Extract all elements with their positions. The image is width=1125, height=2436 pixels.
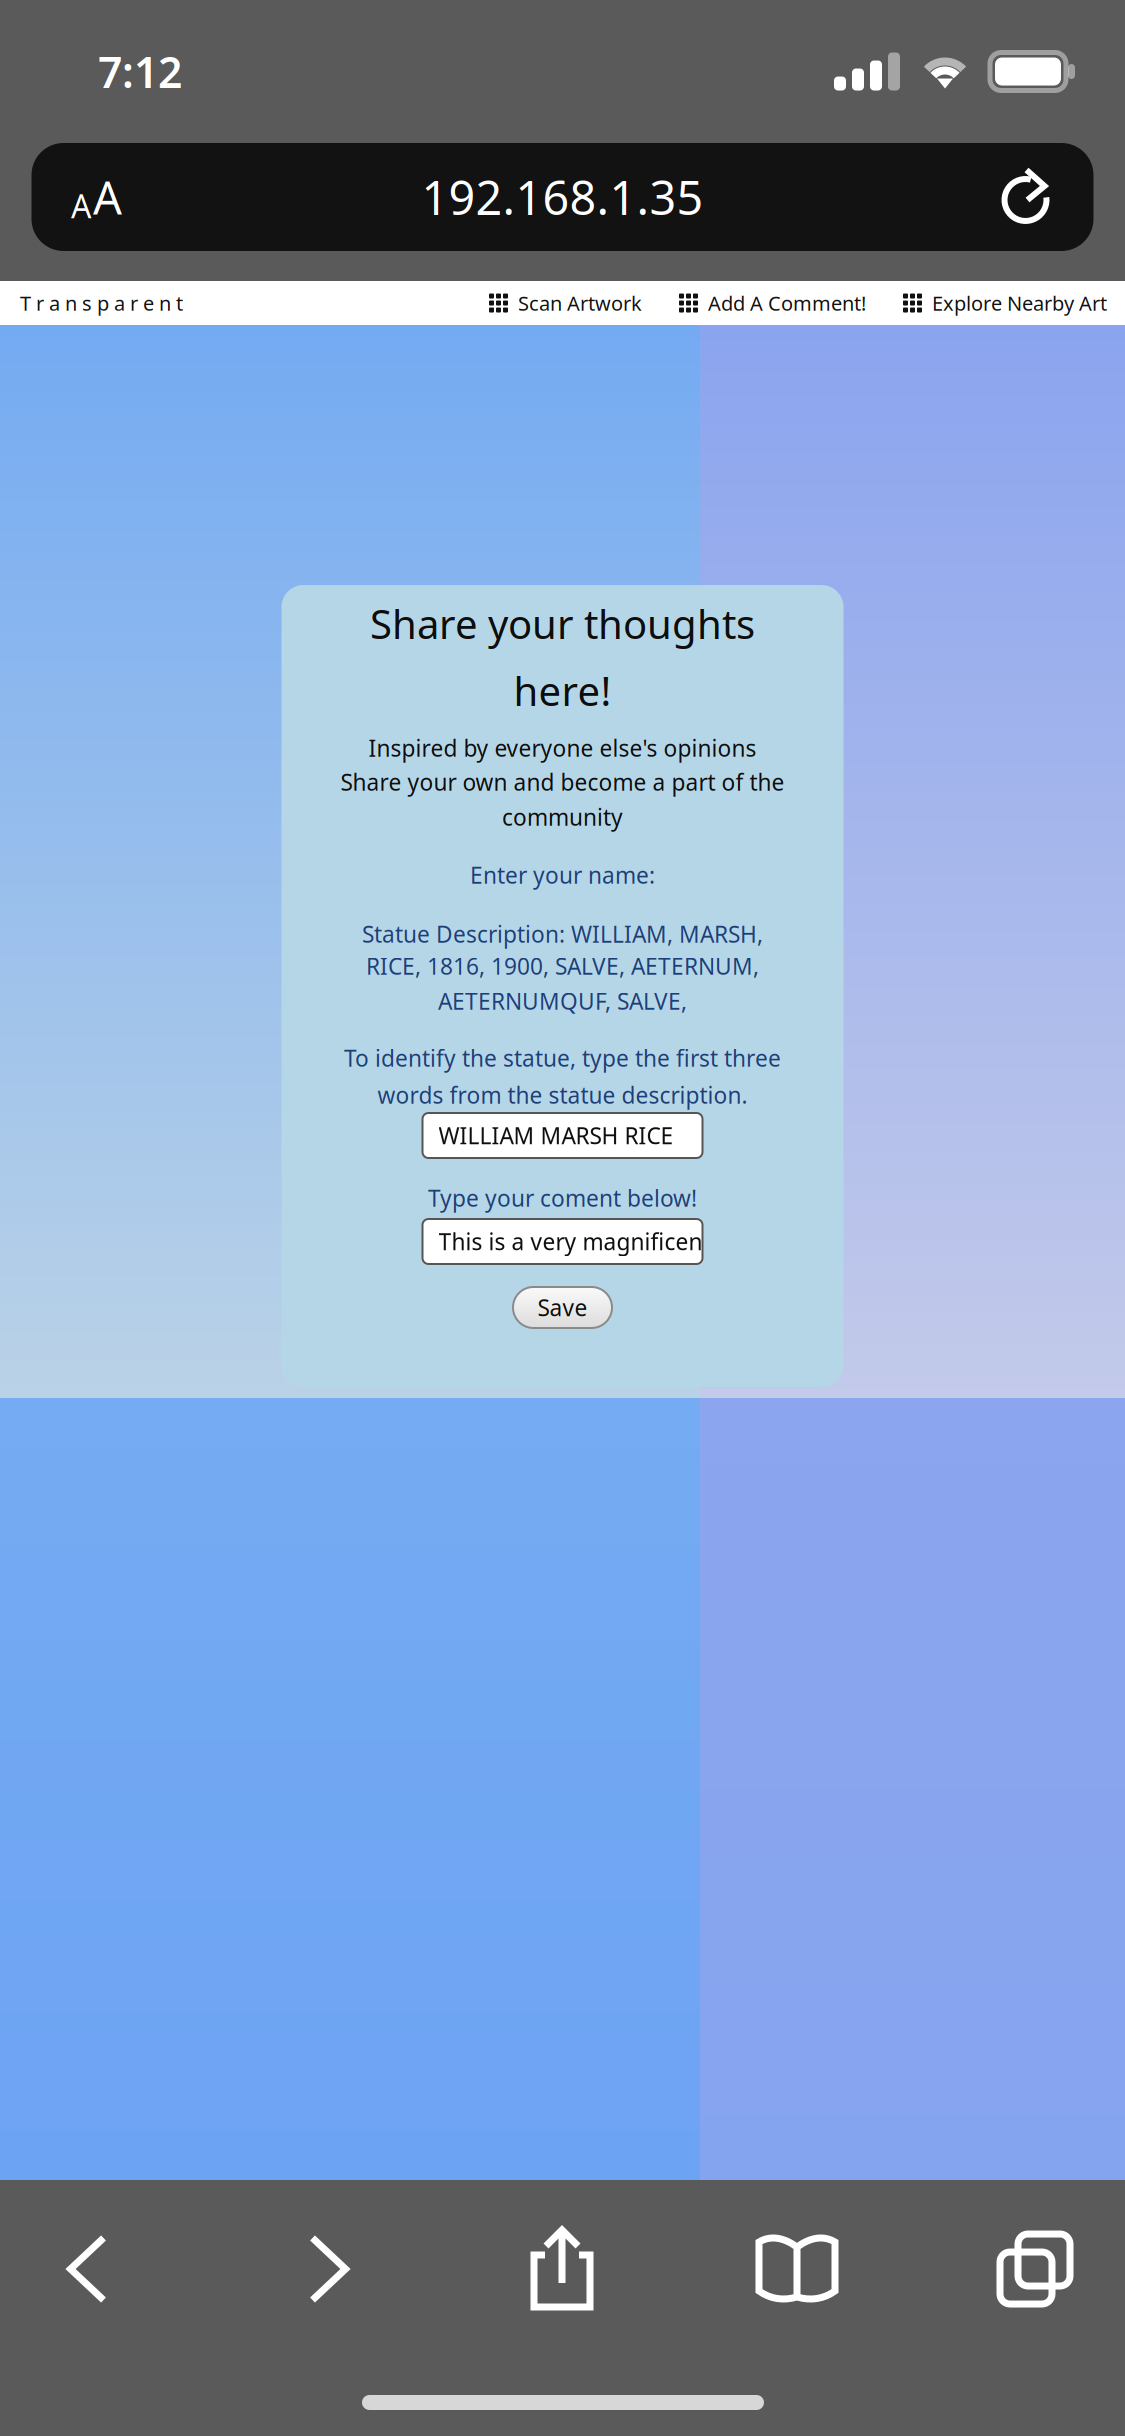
staticText: This is a very magnificen — [438, 1226, 702, 1256]
staticText: Share your own and become a part of the — [340, 767, 784, 797]
button[interactable]: Page settings — [31, 143, 161, 251]
staticText: WILLIAM MARSH RICE — [438, 1120, 673, 1150]
button[interactable]: Reload — [963, 143, 1093, 251]
staticText: A — [93, 167, 122, 227]
staticText: community — [502, 802, 623, 832]
staticText: A — [71, 185, 91, 227]
staticText: here! — [513, 664, 611, 717]
button[interactable]: Back — [12, 2205, 162, 2333]
button[interactable]: Tabs — [960, 2205, 1110, 2333]
button[interactable]: Explore Nearby Art — [903, 290, 1107, 316]
staticText: Inspired by everyone else's opinions — [368, 733, 756, 763]
staticText: Enter your name: — [470, 860, 655, 890]
staticText: RICE, 1816, 1900, SALVE, AETERNUM, — [366, 951, 759, 981]
staticText: Add A Comment! — [708, 290, 866, 316]
button[interactable]: Scan Artwork — [489, 290, 642, 316]
button[interactable]: Save — [513, 1287, 612, 1328]
staticText: 7:12 — [98, 43, 182, 100]
staticText: Explore Nearby Art — [932, 290, 1107, 316]
button[interactable]: Bookmarks — [722, 2205, 872, 2333]
staticText: Type your coment below! — [428, 1183, 697, 1213]
staticText: Scan Artwork — [518, 290, 642, 316]
staticText: words from the statue description. — [377, 1080, 747, 1110]
staticText: AETERNUMQUF, SALVE, — [438, 986, 687, 1016]
staticText: To identify the statue, type the first t… — [344, 1043, 781, 1073]
staticText: 192.168.1.35 — [421, 166, 703, 228]
staticText: Save — [537, 1292, 587, 1322]
staticText: Share your thoughts — [370, 597, 755, 650]
staticText: T r a n s p a r e n t — [20, 290, 183, 316]
staticText: Statue Description: WILLIAM, MARSH, — [362, 919, 763, 949]
button[interactable]: Share — [487, 2205, 637, 2333]
button[interactable]: Forward — [254, 2205, 404, 2333]
button[interactable]: Add A Comment! — [679, 290, 866, 316]
